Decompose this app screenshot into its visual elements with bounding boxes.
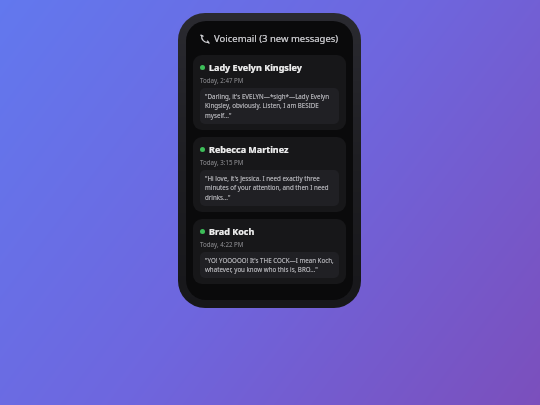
staticText: "Hi love, it's Jessica. I need exactly t… — [205, 174, 334, 202]
staticText: Today, 3:15 PM — [200, 158, 244, 166]
staticText: "YO! YOOOOO! It's THE COCK—I mean Koch, … — [205, 256, 334, 274]
button[interactable]: Rebecca Martinez — [193, 137, 346, 212]
staticText: Voicemail (3 new messages) — [214, 32, 339, 45]
staticText: Rebecca Martinez — [209, 143, 289, 155]
staticText: Today, 4:22 PM — [200, 240, 244, 248]
staticText: "Darling, it's EVELYN—*sigh*—Lady Evelyn… — [205, 92, 334, 120]
staticText: Lady Evelyn Kingsley — [209, 61, 302, 73]
staticText: Today, 2:47 PM — [200, 76, 244, 84]
button[interactable]: Brad Koch — [193, 219, 346, 284]
staticText: Brad Koch — [209, 225, 255, 237]
button[interactable]: Voicemail — [193, 32, 346, 45]
button[interactable]: Lady Evelyn Kingsley — [193, 55, 346, 130]
other: Voicemail — [200, 34, 210, 44]
